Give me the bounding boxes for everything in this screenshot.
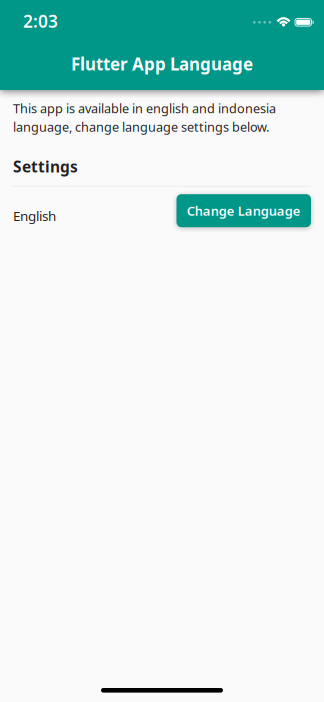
staticText: Settings <box>13 156 78 177</box>
staticText: Flutter App Language <box>71 53 253 75</box>
button[interactable]: Change Language <box>176 194 311 227</box>
staticText: Change Language <box>187 202 301 219</box>
staticText: language, change language settings below… <box>13 118 269 135</box>
staticText: English <box>13 207 56 225</box>
staticText: 2:03 <box>23 9 58 32</box>
staticText: This app is available in english and ind… <box>13 100 276 117</box>
